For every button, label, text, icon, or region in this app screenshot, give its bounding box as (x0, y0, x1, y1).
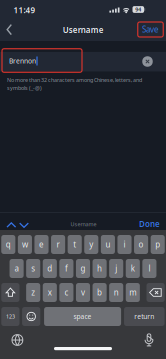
button[interactable]: v (76, 283, 90, 302)
staticText: k (131, 263, 135, 274)
staticText: v (81, 287, 85, 298)
staticText: No more than 32 characters among Chinese… (7, 76, 142, 84)
staticText: return (134, 312, 154, 321)
button[interactable]: f (59, 259, 73, 278)
staticText: e (39, 239, 44, 250)
button[interactable]: t (68, 235, 82, 254)
staticText: Username (70, 221, 96, 228)
staticText: j (115, 263, 117, 274)
staticText: t (73, 239, 76, 250)
staticText: space (74, 312, 92, 321)
staticText: f (65, 263, 68, 274)
staticText: b (97, 287, 102, 298)
button[interactable]: m (126, 283, 140, 302)
staticText: Username (63, 24, 104, 35)
button[interactable]: s (26, 259, 40, 278)
staticText: o (139, 239, 144, 250)
staticText: r (57, 239, 60, 250)
button[interactable]: Dictate (143, 333, 155, 347)
button[interactable]: u (101, 235, 115, 254)
staticText: c (64, 287, 68, 298)
staticText: 123 (6, 313, 15, 320)
staticText: a (15, 263, 19, 274)
button[interactable]: z (26, 283, 40, 302)
button[interactable]: w (18, 235, 32, 254)
staticText: Done (139, 218, 160, 229)
button[interactable]: Clear text (142, 56, 153, 67)
button[interactable]: e (34, 235, 49, 254)
staticText: w (22, 239, 28, 250)
button[interactable]: x (43, 283, 57, 302)
button[interactable]: Emoji (22, 307, 40, 326)
staticText: x (48, 287, 52, 298)
button[interactable]: n (109, 283, 123, 302)
button[interactable]: k (126, 259, 140, 278)
button[interactable]: return (124, 307, 165, 326)
staticText: l (148, 263, 150, 274)
button[interactable]: o (134, 235, 148, 254)
staticText: s (31, 263, 35, 274)
button[interactable]: Next field (17, 220, 31, 230)
button[interactable]: Done (135, 217, 163, 231)
button[interactable]: d (43, 259, 57, 278)
button[interactable]: Shift (1, 283, 19, 302)
staticText: q (6, 239, 11, 250)
staticText: Save (142, 24, 159, 35)
staticText: i (123, 239, 125, 250)
button[interactable]: h (92, 259, 107, 278)
button[interactable]: q (1, 235, 15, 254)
staticText: u (105, 239, 110, 250)
button[interactable]: r (51, 235, 65, 254)
staticText: z (31, 287, 35, 298)
button[interactable]: l (142, 259, 156, 278)
button[interactable]: b (93, 283, 107, 302)
button[interactable]: g (76, 259, 90, 278)
button[interactable]: j (109, 259, 123, 278)
button[interactable]: a (10, 259, 24, 278)
staticText: symbols (_-@) (7, 84, 42, 92)
staticText: 11:49 (13, 5, 35, 15)
button[interactable]: Next keyboard (9, 332, 25, 348)
staticText: 94 (135, 6, 141, 13)
button[interactable]: Delete (146, 283, 165, 302)
staticText: m (129, 287, 136, 298)
staticText: d (47, 263, 52, 274)
button[interactable]: i (117, 235, 132, 254)
staticText: g (80, 263, 85, 274)
staticText: n (114, 287, 119, 298)
staticText: Brennon (9, 57, 36, 65)
button[interactable]: 123 (1, 307, 19, 326)
button[interactable]: space (44, 307, 121, 326)
button[interactable]: Back (2, 23, 16, 37)
button[interactable]: y (84, 235, 98, 254)
staticText: p (155, 239, 160, 250)
button[interactable]: Previous field (4, 220, 18, 230)
staticText: h (97, 263, 102, 274)
button[interactable]: p (151, 235, 165, 254)
staticText: y (89, 239, 93, 250)
button[interactable]: Save (138, 22, 163, 37)
button[interactable]: c (59, 283, 73, 302)
